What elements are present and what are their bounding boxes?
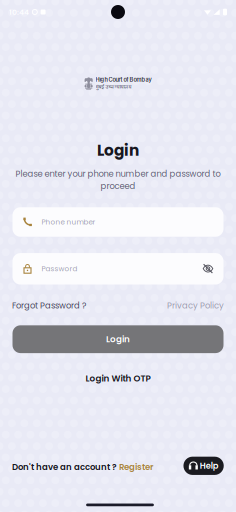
button[interactable]: Login [12, 325, 223, 353]
staticText: Login [97, 140, 139, 161]
staticText: Login [106, 333, 130, 345]
staticText: Register [119, 461, 153, 473]
button[interactable]: Privacy Policy [167, 300, 224, 311]
button[interactable]: Show password [202, 263, 213, 274]
button[interactable]: Register [119, 461, 153, 473]
button[interactable]: Help [183, 457, 224, 475]
button[interactable]: Forgot Password ? [12, 300, 86, 311]
staticText: 10:44 [9, 7, 29, 17]
staticText: Please enter your phone number and passw… [15, 168, 220, 180]
staticText: Privacy Policy [167, 300, 224, 311]
staticText: High Court of Bombay [96, 76, 152, 83]
button[interactable]: Login With OTP [58, 372, 178, 384]
staticText: Phone number [41, 217, 95, 227]
staticText: Login With OTP [85, 372, 150, 384]
staticText: Password [41, 264, 77, 274]
staticText: Forgot Password ? [12, 300, 86, 311]
staticText: proceed [100, 180, 135, 192]
staticText: मुंबई उच्च न्यायालय [96, 84, 132, 91]
staticText: Don't have an account ? [12, 461, 119, 473]
staticText: Help [200, 460, 219, 472]
